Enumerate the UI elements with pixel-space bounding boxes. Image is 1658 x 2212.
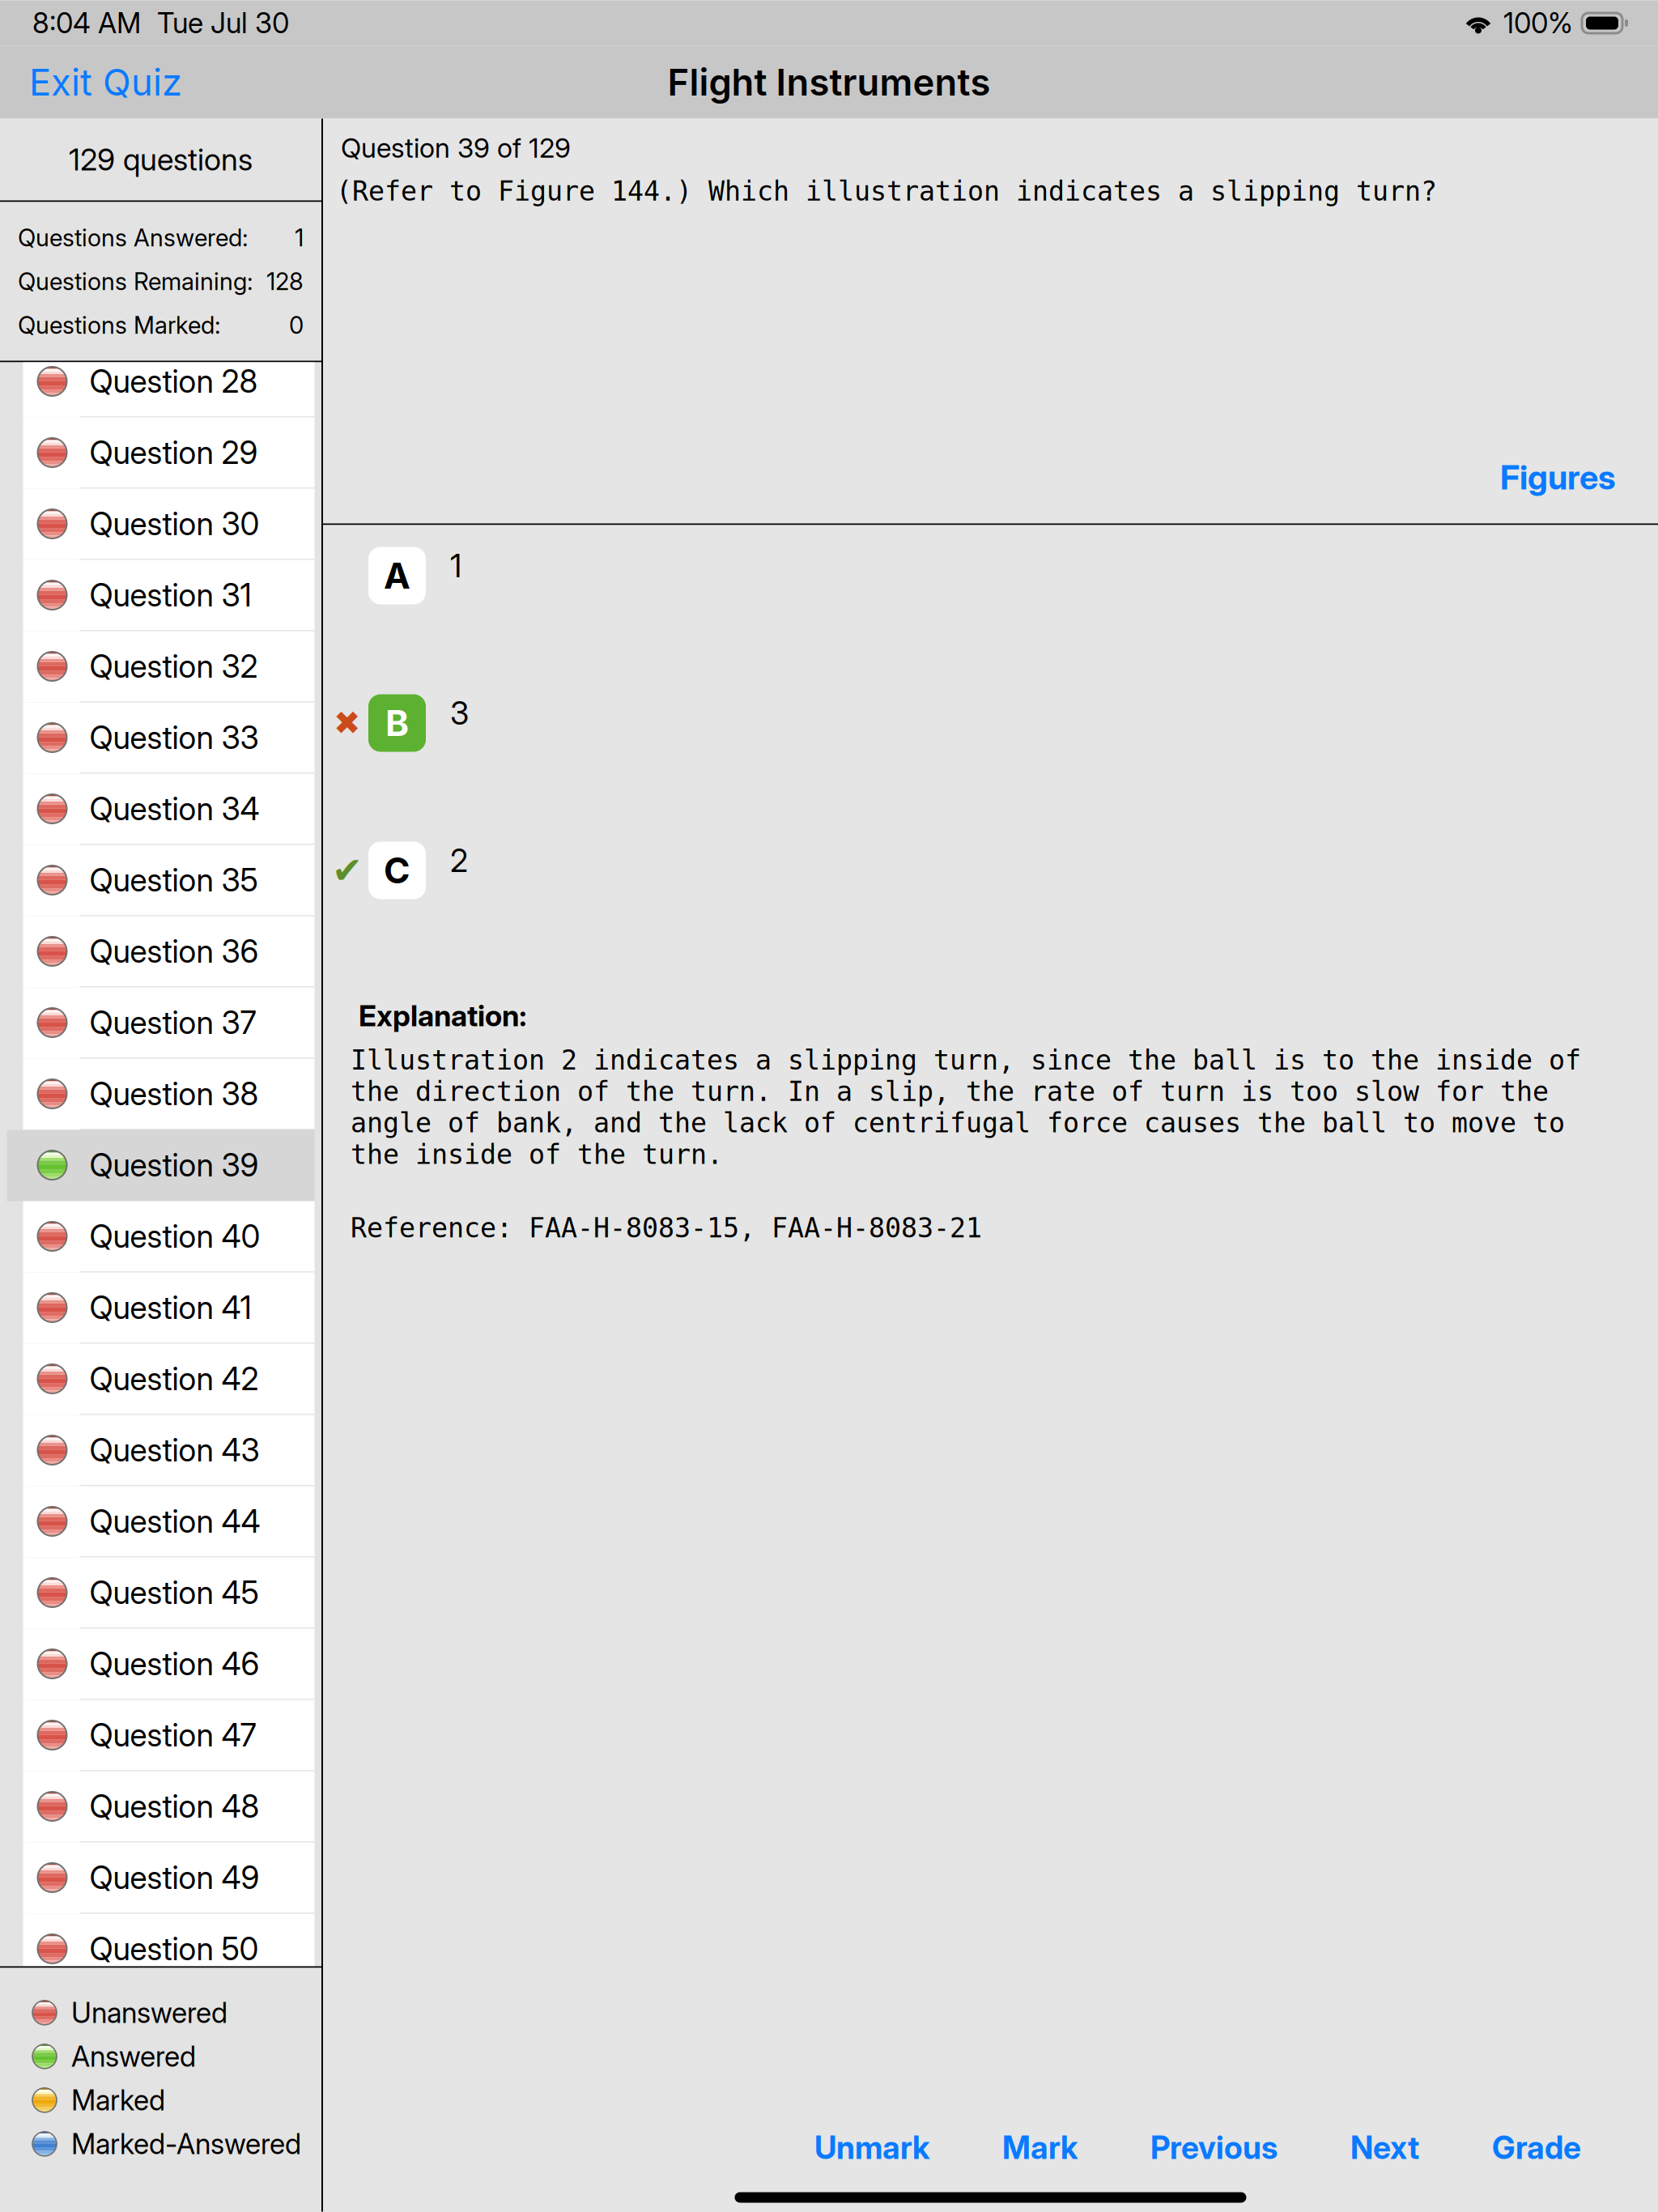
staticText: 8:04 AM: [32, 6, 141, 40]
button[interactable]: Question 42: [7, 1344, 315, 1415]
button[interactable]: Question 46: [7, 1629, 315, 1700]
button[interactable]: Question 39: [7, 1130, 315, 1201]
staticText: Next: [1350, 2129, 1419, 2167]
staticText: Question 50: [89, 1930, 259, 1968]
staticText: Question 41: [89, 1289, 251, 1327]
staticText: Question 33: [89, 719, 259, 757]
staticText: Question 43: [89, 1431, 259, 1469]
staticText: Marked: [71, 2083, 165, 2117]
staticText: 3: [450, 694, 469, 732]
button[interactable]: Next: [1346, 2117, 1424, 2178]
button[interactable]: Question 41: [7, 1272, 315, 1344]
staticText: ✔: [332, 849, 363, 892]
staticText: Tue Jul 30: [157, 6, 289, 40]
button[interactable]: Figures: [1481, 449, 1658, 506]
button[interactable]: A: [368, 547, 426, 604]
staticText: Question 28: [89, 362, 258, 400]
staticText: Question 49: [89, 1859, 259, 1897]
staticText: (Refer to Figure 144.) Which illustratio…: [336, 176, 1437, 207]
staticText: Flight Instruments: [667, 60, 991, 104]
button[interactable]: Question 35: [7, 845, 315, 916]
button[interactable]: Question 31: [7, 560, 315, 631]
button[interactable]: Question 34: [7, 774, 315, 845]
button[interactable]: Question 29: [7, 417, 315, 489]
staticText: Reference: FAA-H-8083-15, FAA-H-8083-21: [351, 1212, 982, 1244]
staticText: Question 44: [89, 1502, 260, 1540]
staticText: Question 31: [89, 576, 251, 614]
staticText: 1: [295, 223, 304, 252]
staticText: A: [384, 554, 410, 597]
button[interactable]: Mark: [997, 2117, 1082, 2178]
button[interactable]: Question 45: [7, 1557, 315, 1629]
button[interactable]: Question 32: [7, 631, 315, 702]
staticText: Questions Marked:: [18, 311, 221, 339]
staticText: Figures: [1500, 457, 1616, 498]
button[interactable]: Grade: [1487, 2117, 1586, 2178]
staticText: Question 39 of 129: [341, 132, 571, 164]
button[interactable]: Question 36: [7, 916, 315, 987]
button[interactable]: Question 38: [7, 1059, 315, 1130]
staticText: Question 48: [89, 1787, 259, 1825]
staticText: Grade: [1492, 2129, 1581, 2167]
staticText: Questions Remaining:: [18, 267, 253, 296]
staticText: Question 32: [89, 647, 258, 685]
staticText: Question 37: [89, 1004, 256, 1042]
button[interactable]: Question 49: [7, 1842, 315, 1914]
button[interactable]: B: [368, 694, 426, 752]
staticText: 129 questions: [69, 141, 253, 178]
button[interactable]: C: [368, 842, 426, 899]
button[interactable]: Question 47: [7, 1700, 315, 1771]
button[interactable]: Exit Quiz: [0, 46, 197, 119]
button[interactable]: Question 48: [7, 1771, 315, 1842]
button[interactable]: Question 52: [7, 2056, 315, 2127]
staticText: Question 36: [89, 932, 259, 970]
staticText: 100%: [1503, 6, 1573, 40]
staticText: Mark: [1002, 2129, 1078, 2167]
button[interactable]: Question 43: [7, 1415, 315, 1486]
button[interactable]: Question 37: [7, 987, 315, 1059]
staticText: B: [385, 701, 409, 745]
button[interactable]: Question 33: [7, 702, 315, 774]
staticText: Unanswered: [71, 1996, 227, 2030]
staticText: Question 40: [89, 1217, 260, 1255]
staticText: Unmark: [814, 2129, 929, 2167]
staticText: Illustration 2 indicates a slipping turn…: [351, 1045, 1581, 1170]
staticText: Question 52: [89, 2072, 257, 2110]
staticText: 128: [266, 267, 304, 296]
staticText: C: [384, 849, 410, 892]
button[interactable]: Previous: [1146, 2117, 1282, 2178]
button[interactable]: Question 51: [7, 1985, 315, 2056]
staticText: Question 46: [89, 1645, 259, 1683]
staticText: Marked-Answered: [71, 2127, 301, 2161]
button[interactable]: Question 28: [7, 346, 315, 417]
button[interactable]: Question 40: [7, 1201, 315, 1272]
staticText: Question 38: [89, 1075, 259, 1113]
staticText: Explanation:: [359, 998, 527, 1033]
staticText: Question 42: [89, 1360, 259, 1398]
staticText: Question 35: [89, 861, 258, 899]
button[interactable]: Unmark: [810, 2117, 934, 2178]
staticText: Question 29: [89, 434, 258, 472]
staticText: Question 34: [89, 790, 259, 828]
button[interactable]: Question 44: [7, 1486, 315, 1557]
staticText: 1: [450, 547, 461, 585]
button[interactable]: Question 30: [7, 489, 315, 560]
staticText: Question 39: [89, 1146, 259, 1184]
staticText: 0: [289, 311, 304, 339]
staticText: Exit Quiz: [29, 60, 182, 104]
button[interactable]: Question 50: [7, 1914, 315, 1985]
staticText: Question 51: [89, 2001, 251, 2039]
staticText: Question 45: [89, 1574, 259, 1612]
staticText: Questions Answered:: [18, 223, 249, 252]
staticText: Previous: [1150, 2129, 1278, 2167]
staticText: 2: [450, 842, 468, 880]
staticText: Answered: [71, 2039, 196, 2073]
staticText: ✖: [334, 704, 361, 742]
staticText: Question 30: [89, 505, 259, 543]
staticText: Question 47: [89, 1716, 256, 1754]
